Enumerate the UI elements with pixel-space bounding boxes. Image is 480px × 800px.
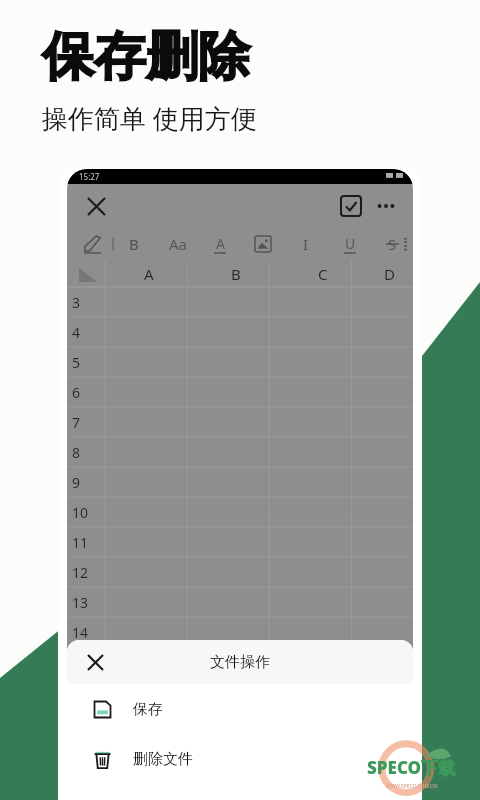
staticText: 11 xyxy=(72,533,89,552)
staticText: C xyxy=(318,264,328,284)
button[interactable]: 删除文件 xyxy=(67,734,413,784)
staticText: 8 xyxy=(72,443,81,462)
staticText: 3 xyxy=(72,293,81,312)
button[interactable]: Close sheet xyxy=(81,648,109,676)
button[interactable]: A xyxy=(208,232,232,256)
staticText: 9 xyxy=(72,473,81,492)
staticText: 4 xyxy=(72,323,81,342)
staticText: 15:27 xyxy=(79,171,100,182)
staticText: S xyxy=(388,234,397,254)
staticText: A xyxy=(216,234,225,253)
staticText: 6 xyxy=(72,383,81,402)
staticText: A xyxy=(144,264,154,284)
staticText: 保存 xyxy=(133,700,163,719)
staticText: 10 xyxy=(72,503,89,522)
button[interactable]: Confirm xyxy=(335,190,367,222)
button[interactable]: U xyxy=(338,232,362,256)
staticText: 7 xyxy=(72,413,81,432)
button[interactable]: Pen xyxy=(79,231,105,257)
button[interactable]: I xyxy=(294,232,318,256)
button[interactable]: Insert image xyxy=(250,231,276,257)
staticText: 13 xyxy=(72,593,89,612)
button[interactable]: Aa xyxy=(166,232,190,256)
staticText: 14 xyxy=(72,623,89,642)
staticText: 文件操作 xyxy=(210,653,270,672)
button[interactable]: Close xyxy=(81,191,111,221)
staticText: B xyxy=(129,234,139,254)
staticText: U xyxy=(345,234,356,253)
staticText: Aa xyxy=(169,234,188,254)
staticText: D xyxy=(384,264,395,284)
button[interactable]: More options xyxy=(371,191,401,221)
staticText: 保存删除 xyxy=(42,24,250,90)
staticText: SPECO下载 xyxy=(367,756,456,779)
staticText: 操作简单 使用方便 xyxy=(42,100,257,136)
staticText: 5 xyxy=(72,353,81,372)
staticText: WWW.SPECO.COM.CN xyxy=(386,783,437,790)
button[interactable]: Align xyxy=(404,231,407,257)
staticText: 12 xyxy=(72,563,89,582)
staticText: 删除文件 xyxy=(133,750,193,769)
button[interactable]: 保存 xyxy=(67,684,413,734)
staticText: I xyxy=(303,234,309,254)
button[interactable]: B xyxy=(122,232,146,256)
staticText: B xyxy=(231,264,241,284)
button[interactable]: S xyxy=(380,232,404,256)
